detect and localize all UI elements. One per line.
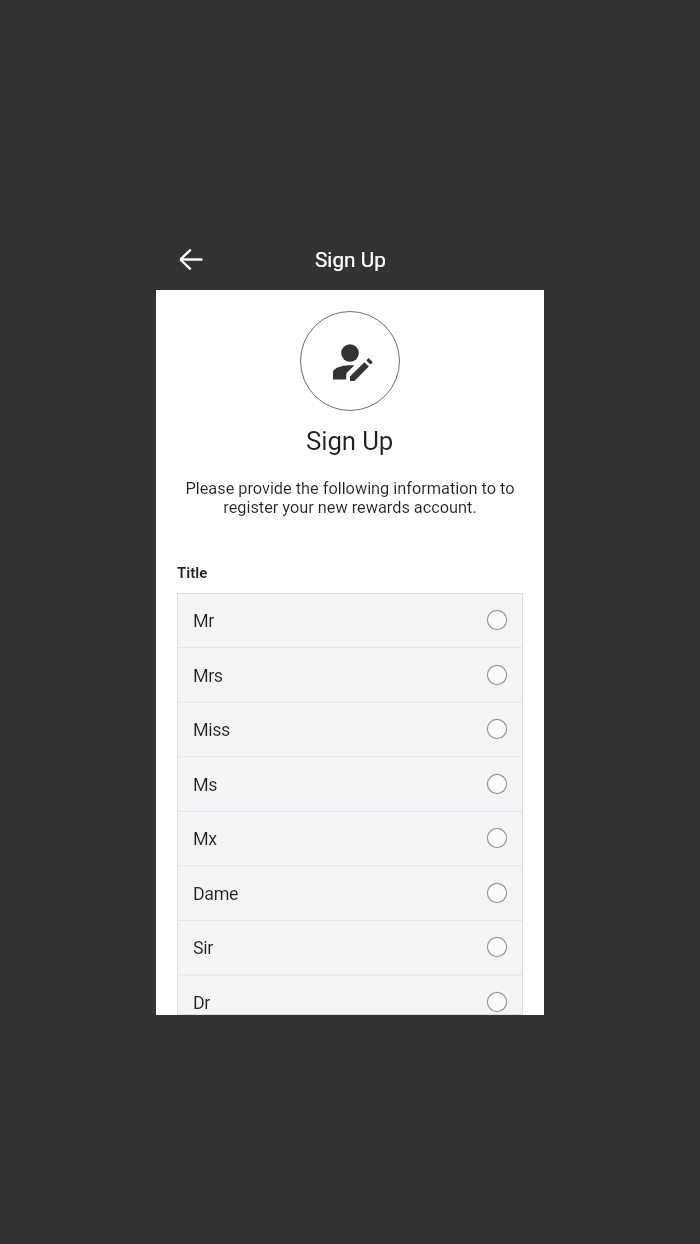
staticText: Mrs bbox=[193, 665, 223, 686]
staticText: Dr bbox=[193, 992, 210, 1013]
staticText: Sign Up bbox=[315, 248, 386, 272]
staticText: Miss bbox=[193, 719, 230, 740]
button[interactable]: Sir bbox=[177, 920, 523, 975]
button[interactable]: Mx bbox=[177, 811, 523, 866]
button[interactable]: Back bbox=[167, 235, 215, 283]
button[interactable]: Dame bbox=[177, 866, 523, 921]
button[interactable]: Dr bbox=[177, 975, 523, 1015]
button[interactable]: Ms bbox=[177, 757, 523, 812]
button[interactable]: Miss bbox=[177, 702, 523, 757]
staticText: Please provide the following information… bbox=[174, 479, 526, 517]
staticText: Sir bbox=[193, 937, 213, 958]
staticText: Mr bbox=[193, 610, 214, 631]
staticText: Mx bbox=[193, 828, 217, 849]
staticText: Sign Up bbox=[306, 426, 394, 456]
staticText: Dame bbox=[193, 883, 238, 904]
staticText: Ms bbox=[193, 774, 218, 795]
button[interactable]: Mrs bbox=[177, 648, 523, 703]
staticText: Title bbox=[177, 564, 208, 581]
button[interactable]: Mr bbox=[177, 593, 523, 648]
